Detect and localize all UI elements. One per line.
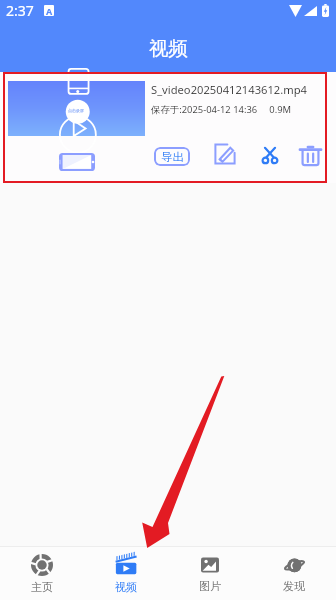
staticText: 点击录屏 (68, 108, 84, 113)
staticText: 主页 (31, 580, 53, 594)
staticText: 发现 (283, 579, 305, 593)
button[interactable]: Edit (210, 139, 240, 169)
button[interactable]: Play (53, 150, 101, 174)
staticText: 视频 (115, 580, 137, 594)
staticText: 保存于:2025-04-12 14:36 0.9M (151, 103, 292, 116)
button[interactable]: Cut (255, 140, 285, 170)
staticText: 图片 (199, 579, 221, 593)
staticText: 导出 (161, 150, 184, 164)
staticText: 2:37 (6, 1, 34, 20)
button[interactable]: 主页 (0, 547, 84, 600)
button[interactable]: 导出 (154, 147, 190, 166)
button[interactable]: Delete (295, 140, 325, 170)
staticText: A (46, 5, 53, 16)
staticText: S_video20250412143612.mp4 (151, 82, 307, 97)
staticText: 视频 (149, 36, 188, 61)
button[interactable]: 视频 (84, 547, 168, 600)
button[interactable]: 图片 (168, 547, 252, 600)
button[interactable]: 发现 (252, 547, 336, 600)
